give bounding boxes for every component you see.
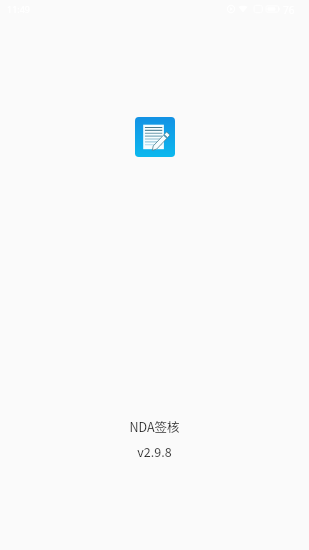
staticText: NDA签核	[129, 417, 180, 435]
staticText: v2.9.8	[137, 442, 172, 460]
button[interactable]: NDA签核 app icon	[135, 117, 175, 157]
